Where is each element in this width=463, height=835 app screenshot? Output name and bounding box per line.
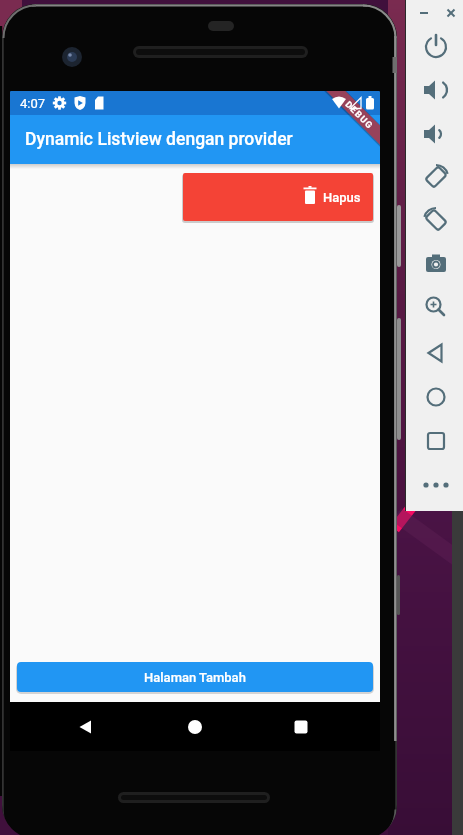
button[interactable] xyxy=(418,465,454,501)
staticText: 4:07 xyxy=(20,96,46,111)
button[interactable]: Halaman Tambah xyxy=(17,662,373,692)
button[interactable]: Dynamic Listview dengan provider xyxy=(10,115,380,164)
button[interactable] xyxy=(418,203,454,239)
button[interactable] xyxy=(418,73,454,109)
button[interactable] xyxy=(61,702,109,751)
button[interactable] xyxy=(418,291,454,327)
button[interactable] xyxy=(277,702,325,751)
staticText: DEBUG xyxy=(343,99,375,132)
button[interactable] xyxy=(418,334,454,370)
staticText: Halaman Tambah xyxy=(144,670,246,685)
button[interactable] xyxy=(418,378,454,414)
button[interactable] xyxy=(418,29,454,65)
button[interactable] xyxy=(444,6,458,20)
staticText: Hapus xyxy=(323,190,361,205)
button[interactable] xyxy=(418,116,454,152)
button[interactable] xyxy=(414,6,428,20)
staticText: Dynamic Listview dengan provider xyxy=(25,129,293,150)
button[interactable]: Hapus xyxy=(183,173,373,221)
button[interactable] xyxy=(418,421,454,457)
button[interactable] xyxy=(171,702,219,751)
button[interactable] xyxy=(418,160,454,196)
button[interactable] xyxy=(418,247,454,283)
